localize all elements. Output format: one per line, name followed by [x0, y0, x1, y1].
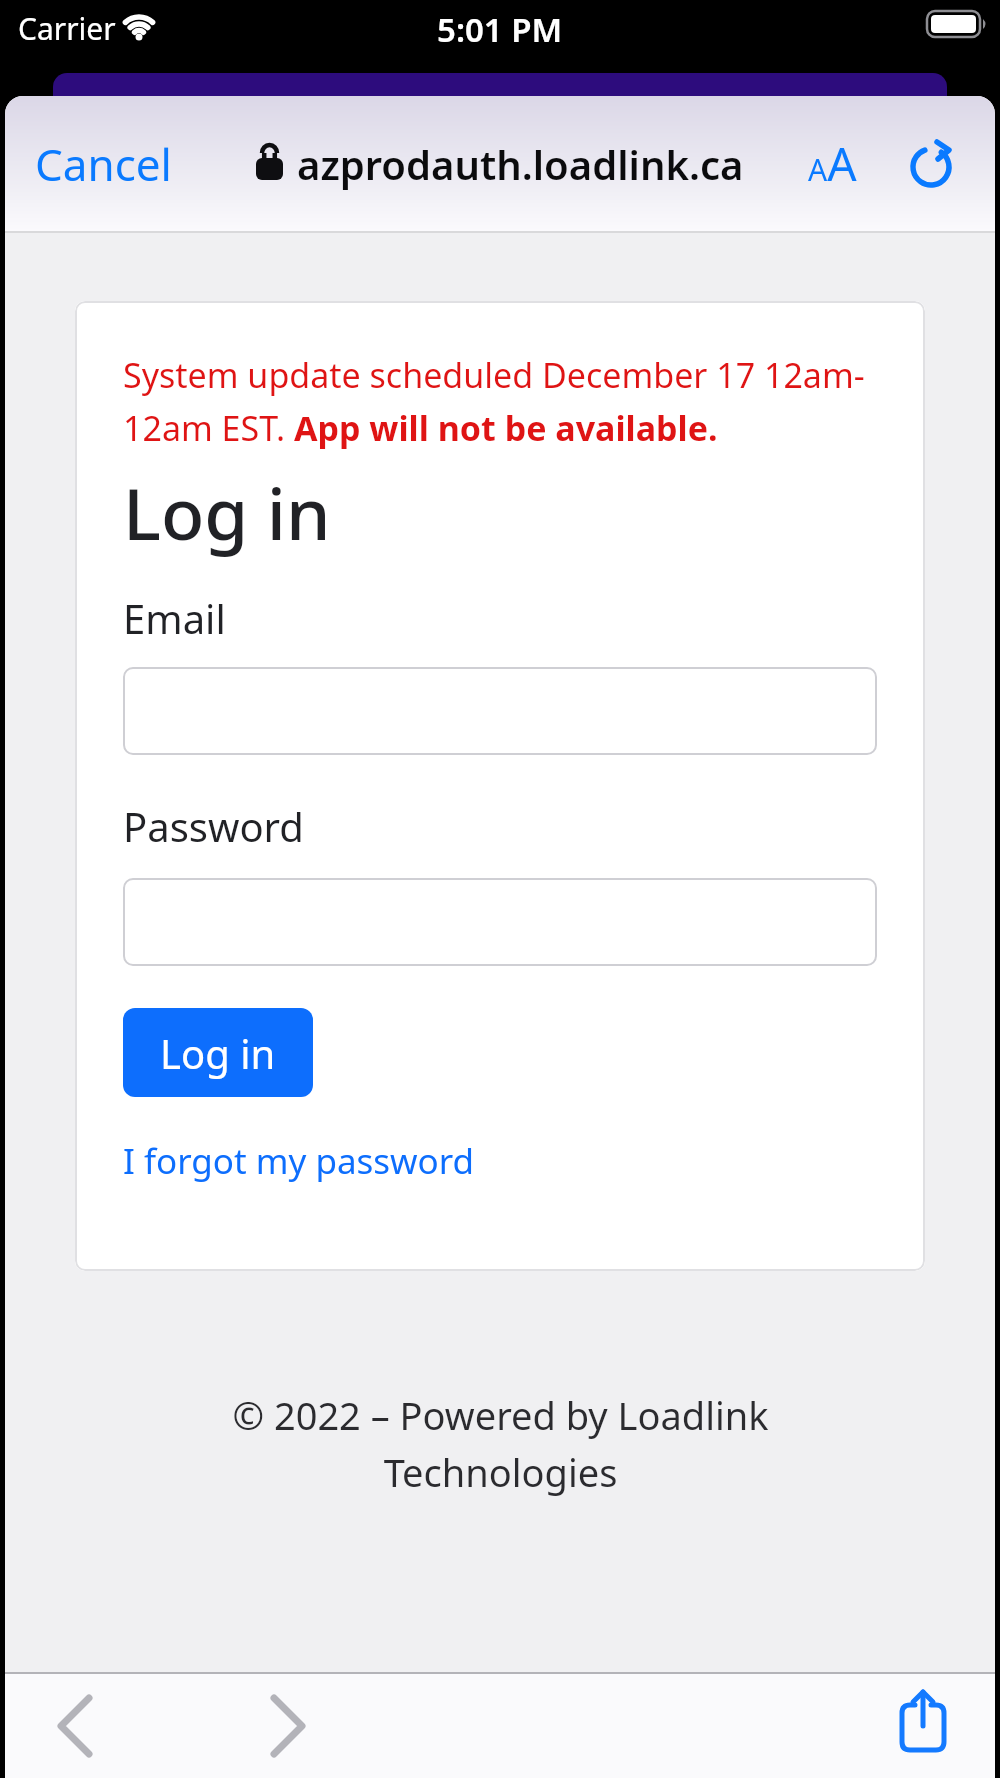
staticText: Carrier — [18, 8, 116, 49]
staticText: 5:01 PM — [437, 7, 563, 52]
staticText: Password — [123, 799, 304, 853]
staticText: Log in — [160, 1026, 276, 1080]
staticText: © 2022 – Powered by Loadlink Technologie… — [232, 1389, 769, 1498]
button[interactable]: Log in — [123, 1008, 313, 1097]
staticText: Log in — [123, 464, 331, 561]
staticText: System update scheduled December 17 12am… — [123, 352, 865, 398]
button[interactable] — [909, 141, 955, 187]
button[interactable]: Cancel — [27, 126, 180, 202]
staticText: azprodauth.loadlink.ca — [297, 137, 744, 191]
button[interactable] — [123, 667, 877, 755]
button[interactable] — [45, 1698, 101, 1754]
button[interactable] — [262, 1698, 318, 1754]
staticText: Email — [123, 591, 226, 645]
button[interactable] — [897, 1690, 957, 1762]
staticText: 12am EST. App will not be available. — [123, 405, 718, 451]
staticText: Cancel — [35, 134, 172, 194]
button[interactable]: AA — [808, 132, 857, 195]
staticText: AA — [808, 132, 857, 195]
button[interactable] — [123, 878, 877, 966]
button[interactable]: I forgot my password — [123, 1137, 475, 1185]
staticText: I forgot my password — [123, 1137, 475, 1185]
